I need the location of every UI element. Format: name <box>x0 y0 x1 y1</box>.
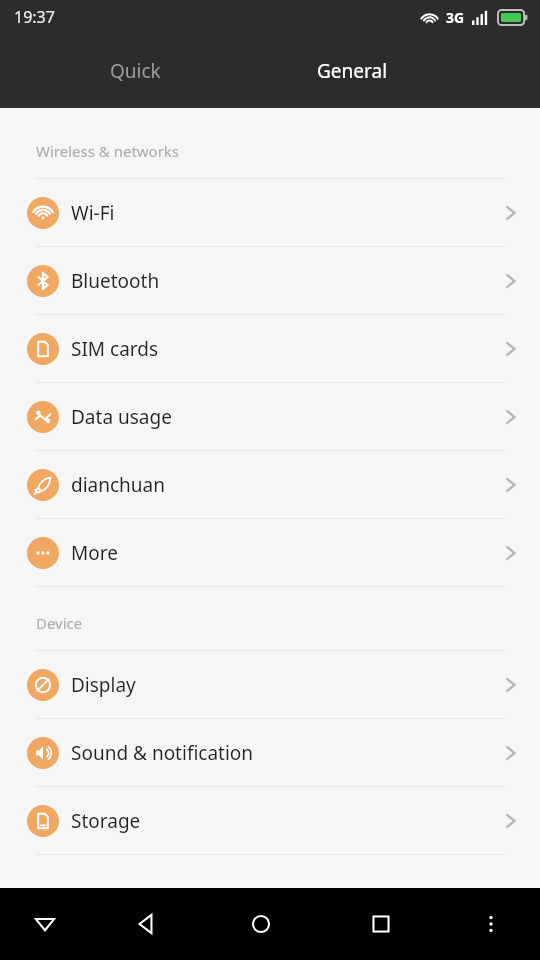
button[interactable]: dianchuan <box>0 451 540 518</box>
staticText: Quick <box>110 58 161 84</box>
button[interactable]: Back <box>90 888 201 960</box>
staticText: More <box>71 540 118 566</box>
button[interactable]: Data usage <box>0 383 540 450</box>
button[interactable]: Recents <box>321 888 441 960</box>
staticText: dianchuan <box>71 472 165 498</box>
button[interactable]: SIM cards <box>0 315 540 382</box>
staticText: Storage <box>71 808 141 834</box>
staticText: SIM cards <box>71 336 159 362</box>
button[interactable]: Bluetooth <box>0 247 540 314</box>
staticText: Sound & notification <box>71 740 254 766</box>
staticText: General <box>317 58 388 84</box>
staticText: Display <box>71 672 136 698</box>
staticText: Device <box>36 613 83 633</box>
button[interactable]: Sound & notification <box>0 719 540 786</box>
staticText: Data usage <box>71 404 172 430</box>
button[interactable]: Home <box>201 888 321 960</box>
staticText: Bluetooth <box>71 268 160 294</box>
button[interactable]: Quick <box>0 34 270 108</box>
staticText: Wi-Fi <box>71 200 115 226</box>
button[interactable]: Wi-Fi <box>0 179 540 246</box>
button[interactable]: General <box>270 34 435 108</box>
button[interactable]: More <box>0 519 540 586</box>
staticText: 3G <box>446 8 465 27</box>
button[interactable]: Hide keyboard <box>0 888 90 960</box>
staticText: 19:37 <box>14 6 55 28</box>
staticText: Wireless & networks <box>36 141 180 161</box>
button[interactable]: Display <box>0 651 540 718</box>
button[interactable]: Storage <box>0 787 540 854</box>
button[interactable]: Menu <box>441 888 540 960</box>
